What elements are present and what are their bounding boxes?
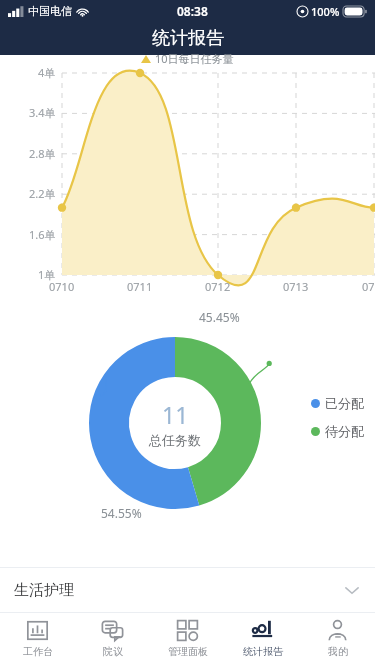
button[interactable]: 统计报告 <box>225 613 300 667</box>
staticText: 统计报告 <box>152 27 224 50</box>
staticText: 管理面板 <box>168 645 208 658</box>
staticText: 生活护理 <box>14 581 74 600</box>
staticText: 我的 <box>328 645 348 658</box>
staticText: 1单 <box>38 267 56 282</box>
staticText: 45.45% <box>199 309 240 325</box>
button[interactable]: 管理面板 <box>150 613 225 667</box>
staticText: 0713 <box>283 279 309 294</box>
staticText: 待分配 <box>325 423 364 439</box>
staticText: 0710 <box>49 279 75 294</box>
staticText: 2.8单 <box>29 146 56 161</box>
staticText: 08:38 <box>177 3 208 19</box>
staticText: 0711 <box>127 279 153 294</box>
staticText: 10日每日任务量 <box>155 51 234 66</box>
staticText: 4单 <box>38 65 56 80</box>
button[interactable]: 生活护理 <box>0 568 375 612</box>
button[interactable]: 我的 <box>300 613 375 667</box>
staticText: 已分配 <box>325 395 364 411</box>
staticText: 2.2单 <box>29 186 56 201</box>
staticText: 院议 <box>103 645 123 658</box>
staticText: 统计报告 <box>243 645 283 658</box>
staticText: 11 <box>162 399 189 430</box>
staticText: 1.6单 <box>29 227 56 242</box>
button[interactable]: 工作台 <box>0 613 75 667</box>
button[interactable]: 院议 <box>75 613 150 667</box>
staticText: 07 <box>362 279 375 294</box>
staticText: 3.4单 <box>29 105 56 120</box>
staticText: 100% <box>311 4 340 19</box>
staticText: 工作台 <box>23 645 53 658</box>
staticText: 0712 <box>205 279 231 294</box>
staticText: 总任务数 <box>149 432 201 448</box>
staticText: 54.55% <box>101 505 142 521</box>
staticText: 中国电信 <box>28 4 72 18</box>
